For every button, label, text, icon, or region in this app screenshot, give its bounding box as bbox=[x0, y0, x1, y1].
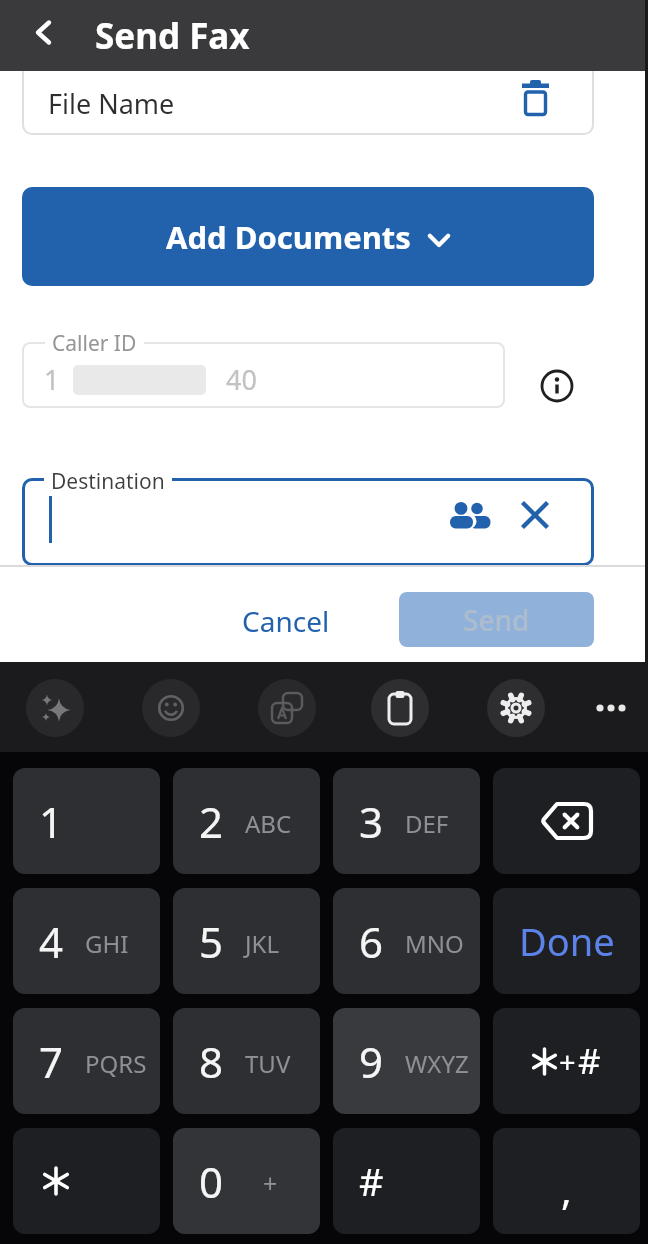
staticText: 9 bbox=[359, 1033, 384, 1090]
staticText: Cancel bbox=[242, 602, 330, 640]
staticText: 40 bbox=[226, 361, 257, 398]
staticText: Add Documents bbox=[166, 216, 411, 258]
staticText: DEF bbox=[405, 807, 449, 840]
staticText: # bbox=[359, 1155, 384, 1207]
staticText: MNO bbox=[405, 927, 464, 960]
staticText: PQRS bbox=[85, 1047, 147, 1080]
staticText: 8 bbox=[199, 1033, 224, 1090]
staticText: 2 bbox=[199, 793, 224, 850]
staticText: WXYZ bbox=[405, 1047, 469, 1080]
staticText: 5 bbox=[199, 913, 224, 970]
staticText: , bbox=[561, 1162, 572, 1216]
staticText: 6 bbox=[359, 913, 384, 970]
staticText: Send bbox=[463, 601, 530, 639]
staticText: Send Fax bbox=[95, 12, 250, 60]
staticText: 0 bbox=[199, 1153, 224, 1210]
staticText: + bbox=[559, 1042, 576, 1081]
staticText: ABC bbox=[245, 807, 292, 840]
staticText: JKL bbox=[245, 927, 279, 960]
staticText: 3 bbox=[359, 793, 384, 850]
staticText: # bbox=[578, 1037, 601, 1085]
staticText: 1 bbox=[44, 361, 60, 398]
staticText: 1 bbox=[39, 793, 64, 850]
staticText: Destination bbox=[51, 467, 165, 496]
staticText: TUV bbox=[245, 1047, 291, 1080]
staticText: Caller ID bbox=[52, 329, 137, 358]
staticText: Done bbox=[519, 915, 615, 967]
staticText: 7 bbox=[39, 1033, 64, 1090]
staticText: 4 bbox=[39, 913, 64, 970]
staticText: File Name bbox=[48, 85, 175, 122]
staticText: + bbox=[263, 1166, 278, 1200]
staticText: GHI bbox=[85, 927, 129, 960]
